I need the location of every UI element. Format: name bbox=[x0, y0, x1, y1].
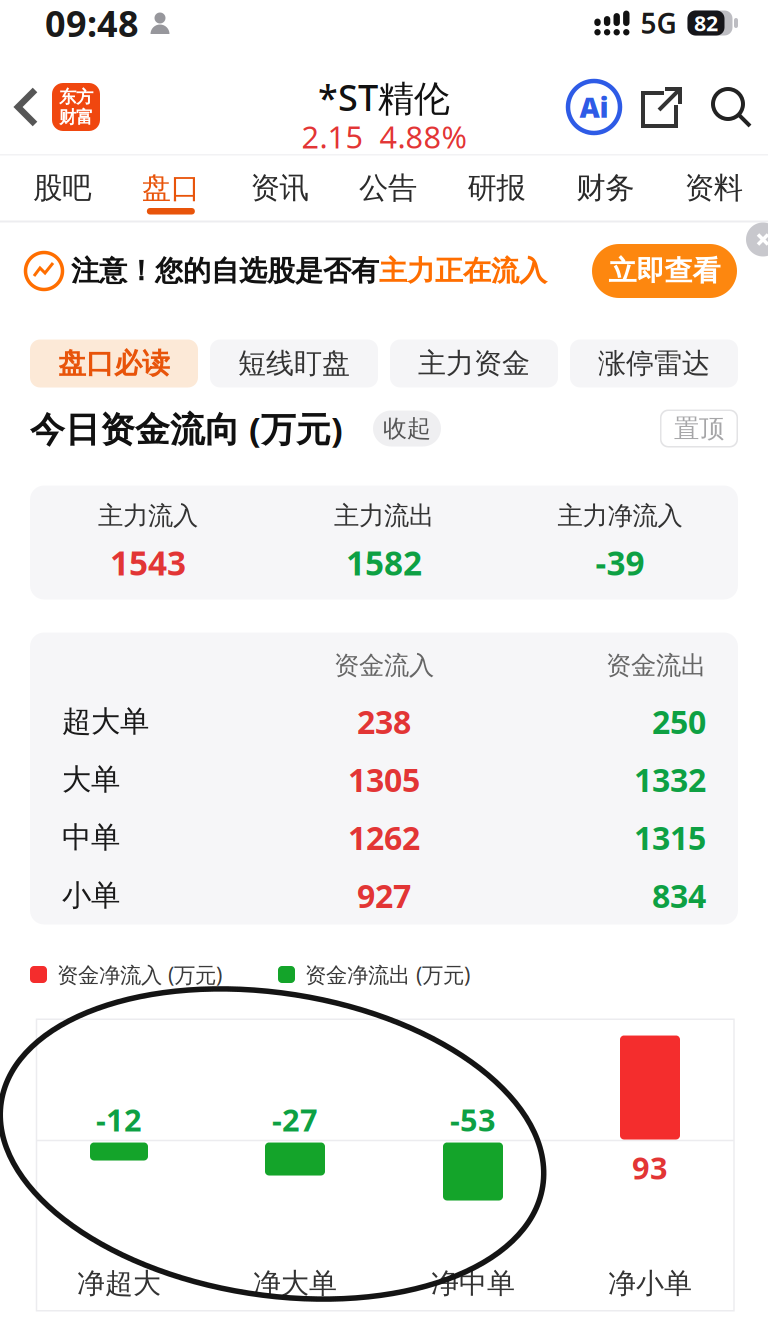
staticText: 资金净流出 (万元) bbox=[305, 960, 470, 989]
staticText: 财务 bbox=[576, 170, 634, 206]
button[interactable]: Close bbox=[734, 222, 768, 256]
staticText: 250 bbox=[652, 700, 706, 743]
staticText: 注意！您的自选股是否有 bbox=[71, 254, 379, 288]
staticText: *ST精伦 bbox=[318, 73, 450, 121]
staticText: 大单 bbox=[62, 761, 120, 797]
staticText: 资讯 bbox=[250, 170, 308, 206]
staticText: 资金流入 bbox=[334, 650, 434, 681]
button[interactable]: Share bbox=[621, 84, 684, 130]
staticText: 5G bbox=[640, 4, 676, 42]
staticText: 834 bbox=[652, 874, 706, 917]
button[interactable]: 立即查看 bbox=[592, 244, 737, 298]
button[interactable]: 公告 bbox=[334, 155, 442, 220]
staticText: 1315 bbox=[634, 816, 706, 859]
button[interactable]: Back bbox=[0, 86, 39, 128]
staticText: 短线盯盘 bbox=[238, 346, 350, 381]
staticText: -27 bbox=[272, 1099, 318, 1140]
button[interactable]: 盘口 bbox=[117, 155, 225, 220]
button[interactable]: 研报 bbox=[442, 155, 551, 220]
button[interactable]: Ai bbox=[567, 80, 621, 134]
button[interactable]: 短线盯盘 bbox=[210, 339, 378, 387]
button[interactable]: 盘口必读 bbox=[30, 339, 198, 387]
staticText: 净超大 bbox=[77, 1266, 161, 1301]
staticText: 净中单 bbox=[431, 1266, 515, 1301]
staticText: 238 bbox=[357, 700, 411, 743]
button[interactable]: 东方财富 bbox=[39, 83, 100, 131]
staticText: 财富 bbox=[59, 106, 93, 128]
staticText: 净小单 bbox=[608, 1266, 692, 1301]
staticText: 涨停雷达 bbox=[598, 346, 710, 381]
staticText: 主力流入 bbox=[98, 500, 198, 531]
staticText: 中单 bbox=[62, 819, 120, 855]
button[interactable]: 股吧 bbox=[8, 155, 117, 220]
staticText: 资料 bbox=[685, 170, 743, 206]
staticText: 主力流出 bbox=[334, 500, 434, 531]
staticText: 927 bbox=[357, 874, 411, 917]
staticText: 1305 bbox=[348, 758, 420, 801]
staticText: 1262 bbox=[348, 816, 420, 859]
staticText: 82 bbox=[694, 9, 718, 37]
staticText: 09:48 bbox=[45, 0, 139, 47]
staticText: 立即查看 bbox=[608, 254, 720, 288]
button[interactable]: 财务 bbox=[551, 155, 659, 220]
staticText: 盘口 bbox=[142, 170, 200, 206]
staticText: 东方 bbox=[59, 86, 93, 107]
staticText: 资金净流入 (万元) bbox=[57, 960, 222, 989]
button[interactable]: 主力资金 bbox=[390, 339, 558, 387]
staticText: -12 bbox=[96, 1099, 142, 1140]
staticText: 研报 bbox=[468, 170, 526, 206]
staticText: 股吧 bbox=[33, 170, 91, 206]
staticText: 今日资金流向 (万元) bbox=[30, 405, 343, 451]
staticText: 收起 bbox=[383, 414, 431, 443]
button[interactable]: 资料 bbox=[659, 155, 768, 220]
staticText: 置顶 bbox=[674, 413, 724, 444]
staticText: 2.15 bbox=[301, 116, 363, 157]
staticText: 小单 bbox=[62, 877, 120, 913]
staticText: 主力净流入 bbox=[557, 500, 682, 531]
staticText: 主力正在流入 bbox=[379, 254, 547, 288]
staticText: 1543 bbox=[110, 540, 186, 585]
button[interactable]: 置顶 bbox=[660, 409, 738, 447]
staticText: 超大单 bbox=[62, 703, 149, 739]
staticText: 1582 bbox=[346, 540, 422, 585]
staticText: 4.88% bbox=[379, 116, 466, 157]
staticText: 盘口必读 bbox=[58, 346, 170, 381]
button[interactable]: 收起 bbox=[373, 410, 441, 446]
staticText: -39 bbox=[595, 540, 644, 585]
staticText: 公告 bbox=[359, 170, 417, 206]
button[interactable]: 涨停雷达 bbox=[570, 339, 738, 387]
staticText: 资金流出 bbox=[606, 650, 706, 681]
button[interactable]: 资讯 bbox=[225, 155, 334, 220]
button[interactable]: Search bbox=[684, 85, 768, 129]
staticText: 净大单 bbox=[253, 1266, 337, 1301]
staticText: Ai bbox=[579, 88, 608, 126]
staticText: 93 bbox=[632, 1147, 668, 1188]
staticText: -53 bbox=[450, 1099, 496, 1140]
staticText: 1332 bbox=[634, 758, 706, 801]
staticText: 主力资金 bbox=[418, 346, 530, 381]
